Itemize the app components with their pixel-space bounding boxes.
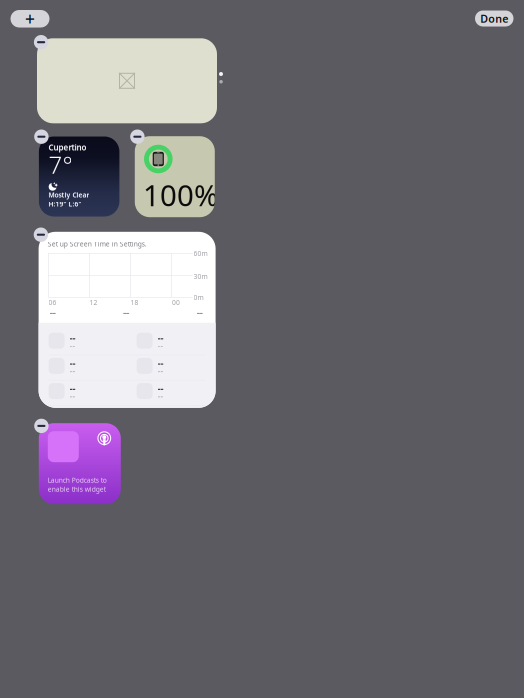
button[interactable]: Add widget — [10, 10, 49, 27]
staticText: 0m — [194, 293, 204, 302]
staticText: -- — [70, 391, 76, 401]
staticText: -- — [70, 340, 76, 351]
staticText: Done — [480, 11, 508, 26]
staticText: -- — [70, 357, 76, 369]
staticText: 12 — [90, 298, 98, 307]
staticText: -- — [158, 357, 164, 369]
image — [119, 73, 135, 89]
staticText: + — [25, 7, 35, 30]
button[interactable]: Remove widget — [34, 129, 49, 144]
staticText: Cupertino — [48, 142, 86, 153]
staticText: 30m — [194, 272, 208, 281]
staticText: -- — [70, 382, 76, 394]
staticText: 7° — [48, 149, 72, 180]
staticText: -- — [158, 331, 164, 344]
staticText: Launch Podcasts to — [48, 476, 107, 485]
button[interactable]: Screen Time widget — [39, 232, 216, 408]
staticText: 18 — [131, 298, 139, 307]
staticText: -- — [158, 391, 164, 401]
button[interactable]: Remove widget — [34, 419, 49, 433]
button[interactable]: Battery widget, 100 percent — [135, 136, 215, 217]
staticText: -- — [50, 305, 56, 319]
button[interactable]: Photos widget — [37, 38, 217, 123]
button[interactable]: Remove widget — [130, 129, 145, 144]
button[interactable]: Remove widget — [34, 35, 48, 49]
staticText: 60m — [194, 249, 208, 258]
staticText: -- — [197, 305, 203, 319]
staticText: Mostly Clear — [48, 191, 89, 199]
staticText: enable this widget — [48, 485, 106, 494]
staticText: 00 — [172, 298, 180, 307]
staticText: Set up Screen Time in Settings. — [48, 240, 147, 248]
button[interactable]: Done — [475, 10, 513, 26]
button[interactable]: Remove widget — [34, 227, 48, 242]
staticText: -- — [70, 331, 76, 344]
staticText: 06 — [49, 298, 57, 307]
staticText: -- — [70, 366, 76, 376]
staticText: H:19° L:6° — [48, 200, 81, 208]
staticText: -- — [158, 340, 164, 351]
staticText: -- — [158, 382, 164, 394]
staticText: -- — [158, 366, 164, 376]
staticText: -- — [123, 305, 129, 319]
button[interactable]: Podcasts widget — [39, 423, 121, 504]
button[interactable]: Weather widget, Cupertino, 7 degrees — [39, 136, 119, 216]
staticText: 100% — [143, 175, 218, 214]
